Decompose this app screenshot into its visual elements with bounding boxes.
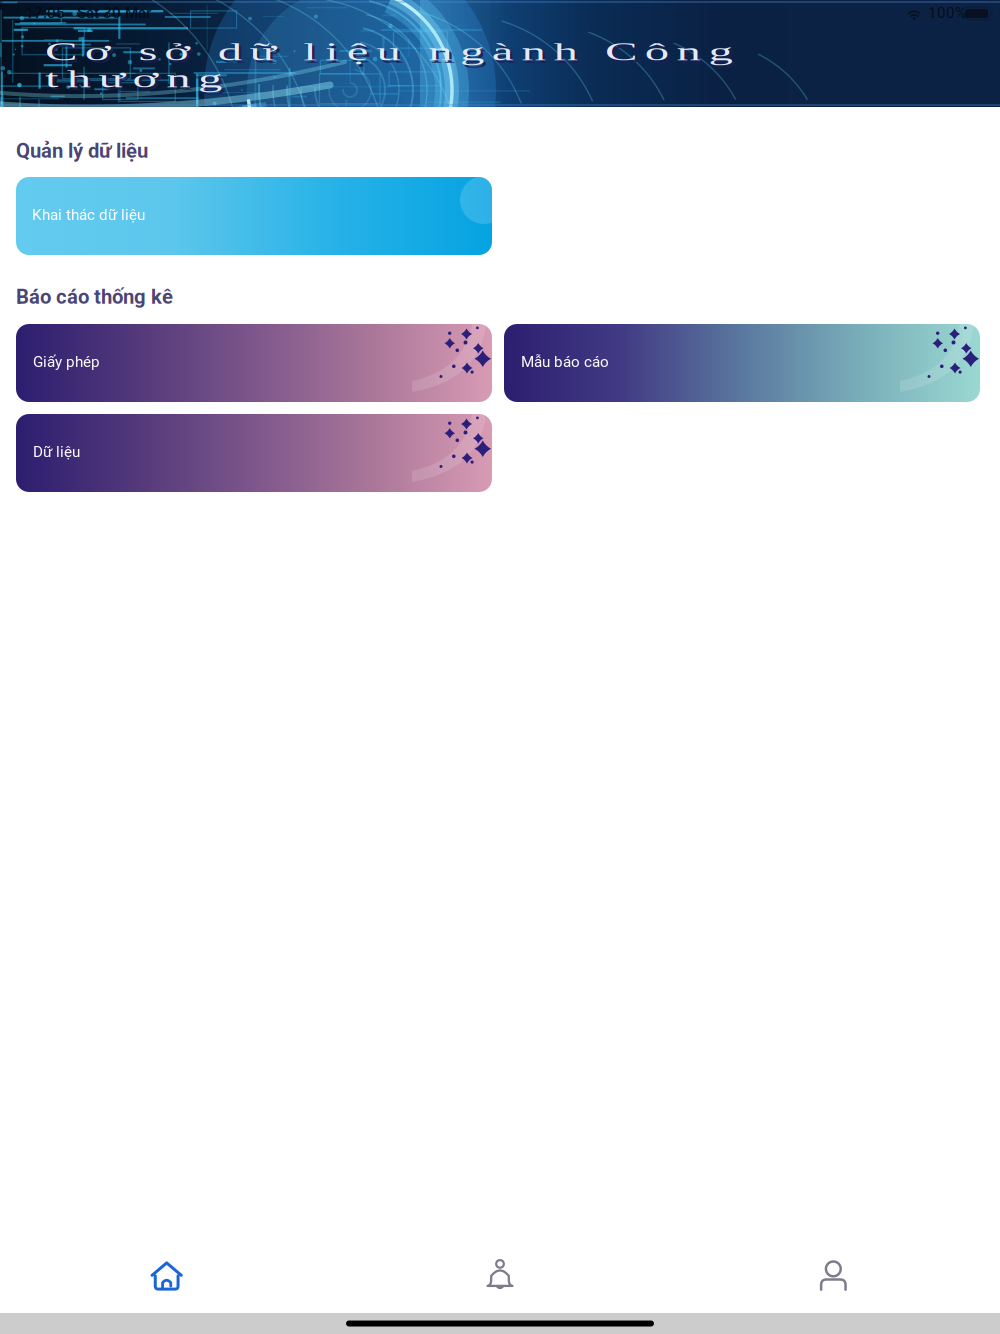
staticText: Quản lý dữ liệu	[16, 139, 148, 163]
staticText: Dữ liệu	[33, 443, 80, 461]
staticText: Cơ sở dữ liệu ngành Công thương	[47, 41, 493, 68]
staticText: Cơ sở dữ liệu ngành Công thương	[45, 38, 491, 65]
button[interactable]: Khai thác dữ liệu	[16, 177, 492, 255]
button[interactable]: Mẫu báo cáo	[504, 324, 980, 402]
staticText: Báo cáo thống kê	[16, 285, 173, 309]
button[interactable]: Home	[0, 1239, 333, 1314]
button[interactable]: Profile	[667, 1239, 1000, 1314]
button[interactable]: Giấy phép	[16, 324, 492, 402]
staticText: Khai thác dữ liệu	[32, 206, 145, 224]
staticText: 100%	[928, 4, 966, 22]
staticText: Giấy phép	[33, 353, 100, 371]
button[interactable]: Dữ liệu	[16, 414, 492, 492]
staticText: 17:05 Sat 30 Mar	[25, 4, 151, 22]
button[interactable]: Notifications	[333, 1239, 667, 1314]
staticText: Mẫu báo cáo	[521, 353, 609, 371]
